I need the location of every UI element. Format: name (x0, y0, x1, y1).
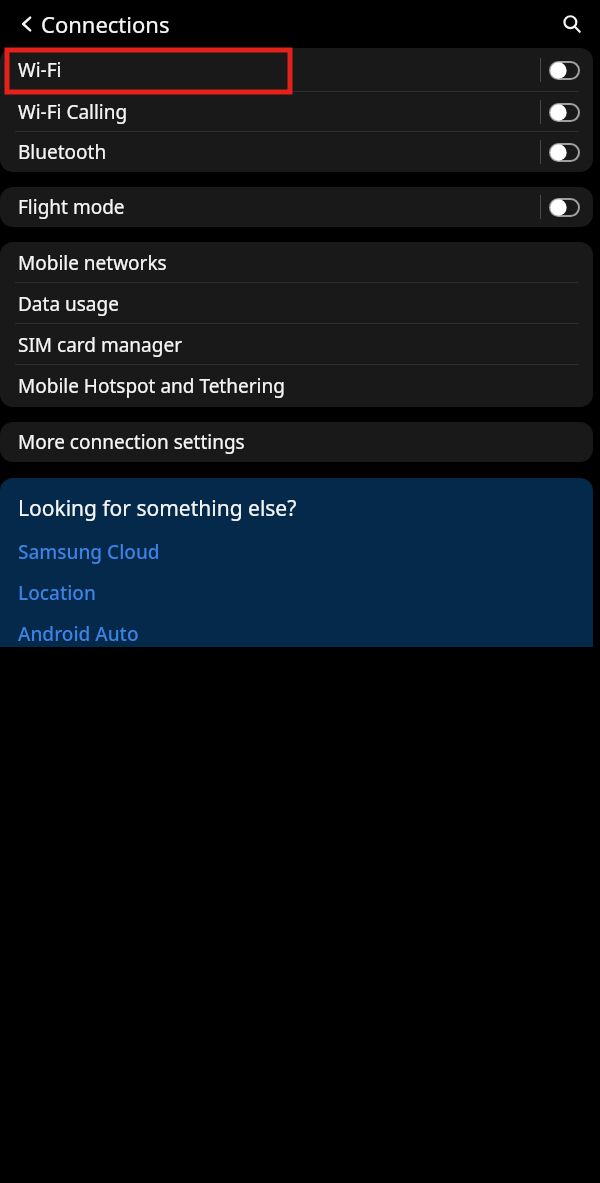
button[interactable]: Wi-Fi (0, 48, 593, 92)
button[interactable]: Back (10, 7, 44, 41)
button[interactable]: Android Auto (18, 621, 139, 647)
button[interactable]: SIM card manager (0, 324, 593, 365)
button[interactable]: Mobile Hotspot and Tethering (0, 365, 593, 407)
staticText: Mobile networks (18, 250, 167, 276)
button[interactable]: Location (18, 580, 96, 606)
button[interactable]: Wi-Fi Calling switch, off (550, 104, 579, 121)
button[interactable]: Wi-Fi Calling (0, 92, 593, 132)
staticText: Looking for something else? (18, 494, 297, 523)
staticText: Mobile Hotspot and Tethering (18, 373, 285, 399)
staticText: Wi-Fi (18, 57, 540, 83)
button[interactable]: Flight mode (0, 187, 593, 227)
staticText: More connection settings (18, 429, 245, 455)
button[interactable]: Search (554, 6, 590, 42)
button[interactable]: Bluetooth switch, off (550, 144, 579, 161)
button[interactable]: More connection settings (0, 422, 593, 462)
staticText: Bluetooth (18, 139, 540, 165)
staticText: Wi-Fi Calling (18, 99, 540, 125)
button[interactable]: Data usage (0, 283, 593, 324)
button[interactable]: Flight mode switch, off (550, 199, 579, 216)
staticText: Connections (41, 9, 170, 39)
button[interactable]: Mobile networks (0, 242, 593, 283)
staticText: Data usage (18, 291, 119, 317)
button[interactable]: Wi-Fi switch, off (550, 62, 579, 79)
staticText: Flight mode (18, 194, 540, 220)
button[interactable]: Samsung Cloud (18, 539, 160, 565)
button[interactable]: Bluetooth (0, 132, 593, 172)
staticText: SIM card manager (18, 332, 182, 358)
